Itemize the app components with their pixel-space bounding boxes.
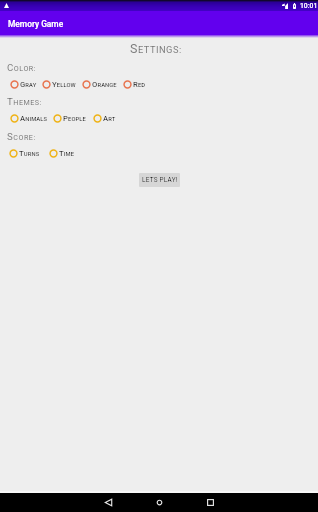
- button[interactable]: ORANGE: [80, 77, 119, 91]
- button[interactable]: Recent apps: [192, 493, 228, 512]
- button[interactable]: Back: [90, 493, 126, 512]
- staticText: Memory Game: [8, 19, 64, 29]
- button[interactable]: TURNS: [7, 146, 42, 160]
- staticText: YELLOW: [52, 80, 76, 89]
- button[interactable]: YELLOW: [40, 77, 78, 91]
- button[interactable]: GRAY: [8, 77, 39, 91]
- staticText: COLOR:: [7, 62, 37, 73]
- staticText: RED: [133, 80, 146, 89]
- staticText: ANIMALS: [20, 114, 48, 123]
- button[interactable]: LETS PLAY!: [139, 173, 180, 187]
- staticText: ART: [103, 114, 116, 123]
- staticText: PEOPLE: [63, 114, 86, 123]
- staticText: 10:01: [300, 2, 318, 10]
- button[interactable]: ART: [91, 111, 118, 125]
- staticText: GRAY: [20, 80, 37, 89]
- staticText: LETS PLAY!: [142, 176, 178, 184]
- staticText: TURNS: [19, 149, 40, 158]
- staticText: THEMES:: [7, 96, 42, 107]
- button[interactable]: PEOPLE: [51, 111, 88, 125]
- staticText: SETTINGS:: [130, 41, 182, 56]
- staticText: TIME: [59, 149, 75, 158]
- staticText: SCORE:: [7, 131, 36, 142]
- button[interactable]: ANIMALS: [8, 111, 50, 125]
- button[interactable]: TIME: [47, 146, 77, 160]
- staticText: ORANGE: [92, 80, 117, 89]
- button[interactable]: Home: [141, 493, 177, 512]
- button[interactable]: RED: [121, 77, 148, 91]
